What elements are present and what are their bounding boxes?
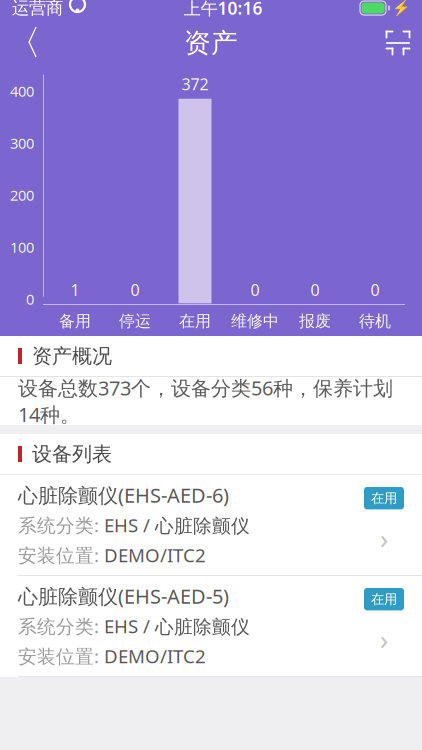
staticText: 0 <box>26 289 34 309</box>
staticText: DEMO/ITC2 <box>104 644 206 668</box>
staticText: 运营商 <box>12 0 63 19</box>
staticText: 0 <box>370 279 379 300</box>
staticText: 资产概况 <box>32 344 112 368</box>
staticText: 维修中 <box>231 311 279 331</box>
staticText: 备用 <box>59 311 91 331</box>
staticText: 400 <box>10 81 34 101</box>
staticText: ⚡ <box>392 0 410 16</box>
button[interactable]: 扫描 <box>374 21 422 65</box>
staticText: 1 <box>70 279 79 300</box>
staticText: EHS / 心脏除颤仪 <box>104 614 250 638</box>
staticText: 系统分类: <box>18 513 104 537</box>
staticText: 0 <box>310 279 319 300</box>
staticText: 心脏除颤仪(EHS-AED-5) <box>18 583 229 609</box>
staticText: EHS / 心脏除颤仪 <box>104 513 250 537</box>
staticText: 报废 <box>299 311 331 331</box>
staticText: 0 <box>250 279 259 300</box>
staticText: 停运 <box>119 311 151 331</box>
staticText: 在用 <box>179 311 211 331</box>
staticText: 上午10:16 <box>183 0 262 19</box>
staticText: DEMO/ITC2 <box>104 543 206 567</box>
staticText: 待机 <box>359 311 391 331</box>
button[interactable]: 心脏除颤仪(EHS-AED-6) <box>0 475 422 575</box>
staticText: 〈 <box>6 22 41 64</box>
staticText: 372 <box>181 73 208 95</box>
staticText: 安装位置: <box>18 644 104 668</box>
staticText: 在用 <box>371 591 397 607</box>
staticText: 系统分类: <box>18 614 104 638</box>
staticText: 200 <box>10 185 34 205</box>
staticText: 设备列表 <box>32 442 112 466</box>
staticText: 设备总数373个，设备分类56种，保养计划14种。 <box>18 374 393 427</box>
staticText: 在用 <box>371 490 397 506</box>
staticText: › <box>380 521 388 556</box>
staticText: 0 <box>130 279 139 300</box>
staticText: › <box>380 622 388 657</box>
button[interactable]: 返回 <box>0 21 48 65</box>
staticText: 心脏除颤仪(EHS-AED-6) <box>18 482 229 508</box>
staticText: 100 <box>10 237 34 257</box>
staticText: 安装位置: <box>18 543 104 567</box>
button[interactable]: 心脏除颤仪(EHS-AED-5) <box>0 576 422 676</box>
staticText: 300 <box>10 133 34 153</box>
staticText: 资产 <box>184 27 238 59</box>
